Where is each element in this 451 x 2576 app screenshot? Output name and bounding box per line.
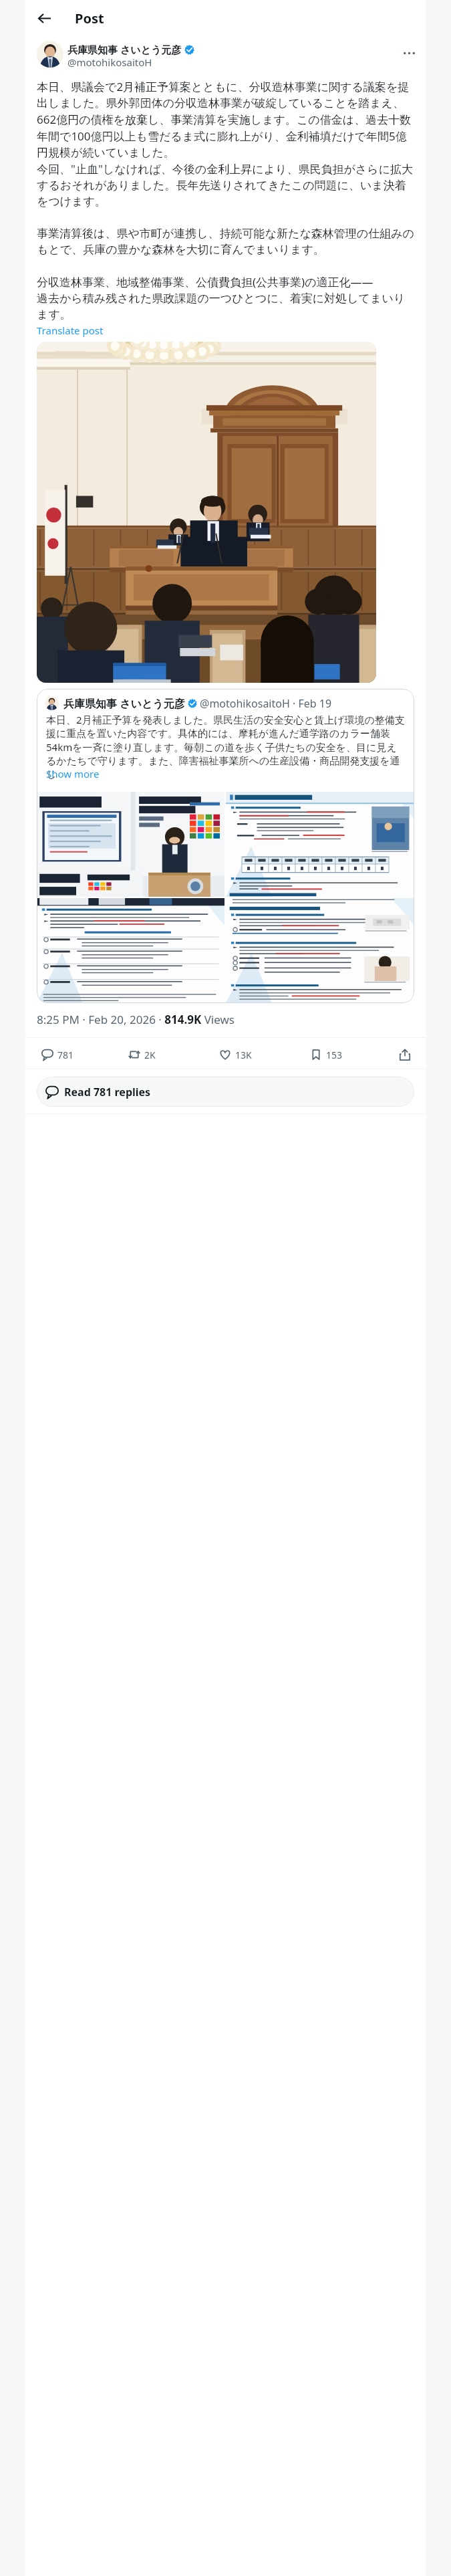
staticText: 153 bbox=[326, 1049, 343, 1061]
staticText: @motohikosaitoH · Feb 19 bbox=[200, 696, 332, 711]
staticText: 本日、2月補正予算を発表しました。県民生活の安全安心と賃上げ環境の整備支援に重点… bbox=[46, 713, 405, 780]
staticText: 13K bbox=[235, 1049, 252, 1061]
staticText: Show more bbox=[46, 767, 100, 780]
button[interactable]: Bookmark bbox=[305, 1043, 383, 1066]
staticText: Translate post bbox=[37, 324, 104, 337]
button[interactable]: 兵庫県知事 さいとう元彦 bbox=[37, 689, 414, 1003]
staticText: 781 bbox=[57, 1049, 74, 1061]
button[interactable]: Like bbox=[214, 1043, 292, 1066]
button[interactable]: Read 781 replies bbox=[37, 1077, 414, 1107]
button[interactable]: Translate post bbox=[37, 324, 104, 337]
button[interactable]: Share bbox=[394, 1043, 416, 1066]
staticText: @motohikosaitoH bbox=[67, 56, 152, 69]
staticText: 本日、県議会で2月補正予算案とともに、分収造林事業に関する議案を提出しました。県… bbox=[37, 79, 415, 322]
button[interactable]: Repost bbox=[123, 1043, 201, 1066]
button[interactable]: Show more bbox=[46, 767, 100, 780]
button[interactable]: Post image bbox=[37, 342, 376, 683]
staticText: 兵庫県知事 さいとう元彦 bbox=[63, 696, 185, 711]
button[interactable]: More options bbox=[397, 41, 421, 65]
staticText: 2K bbox=[144, 1049, 156, 1061]
button[interactable]: Back bbox=[31, 5, 57, 31]
staticText: 8:25 PM · Feb 20, 2026 · 814.9K Views bbox=[37, 1012, 235, 1027]
staticText: 兵庫県知事 さいとう元彦 bbox=[67, 43, 182, 56]
button[interactable]: Reply bbox=[36, 1043, 114, 1066]
staticText: Read 781 replies bbox=[64, 1085, 151, 1099]
staticText: Post bbox=[75, 9, 104, 27]
